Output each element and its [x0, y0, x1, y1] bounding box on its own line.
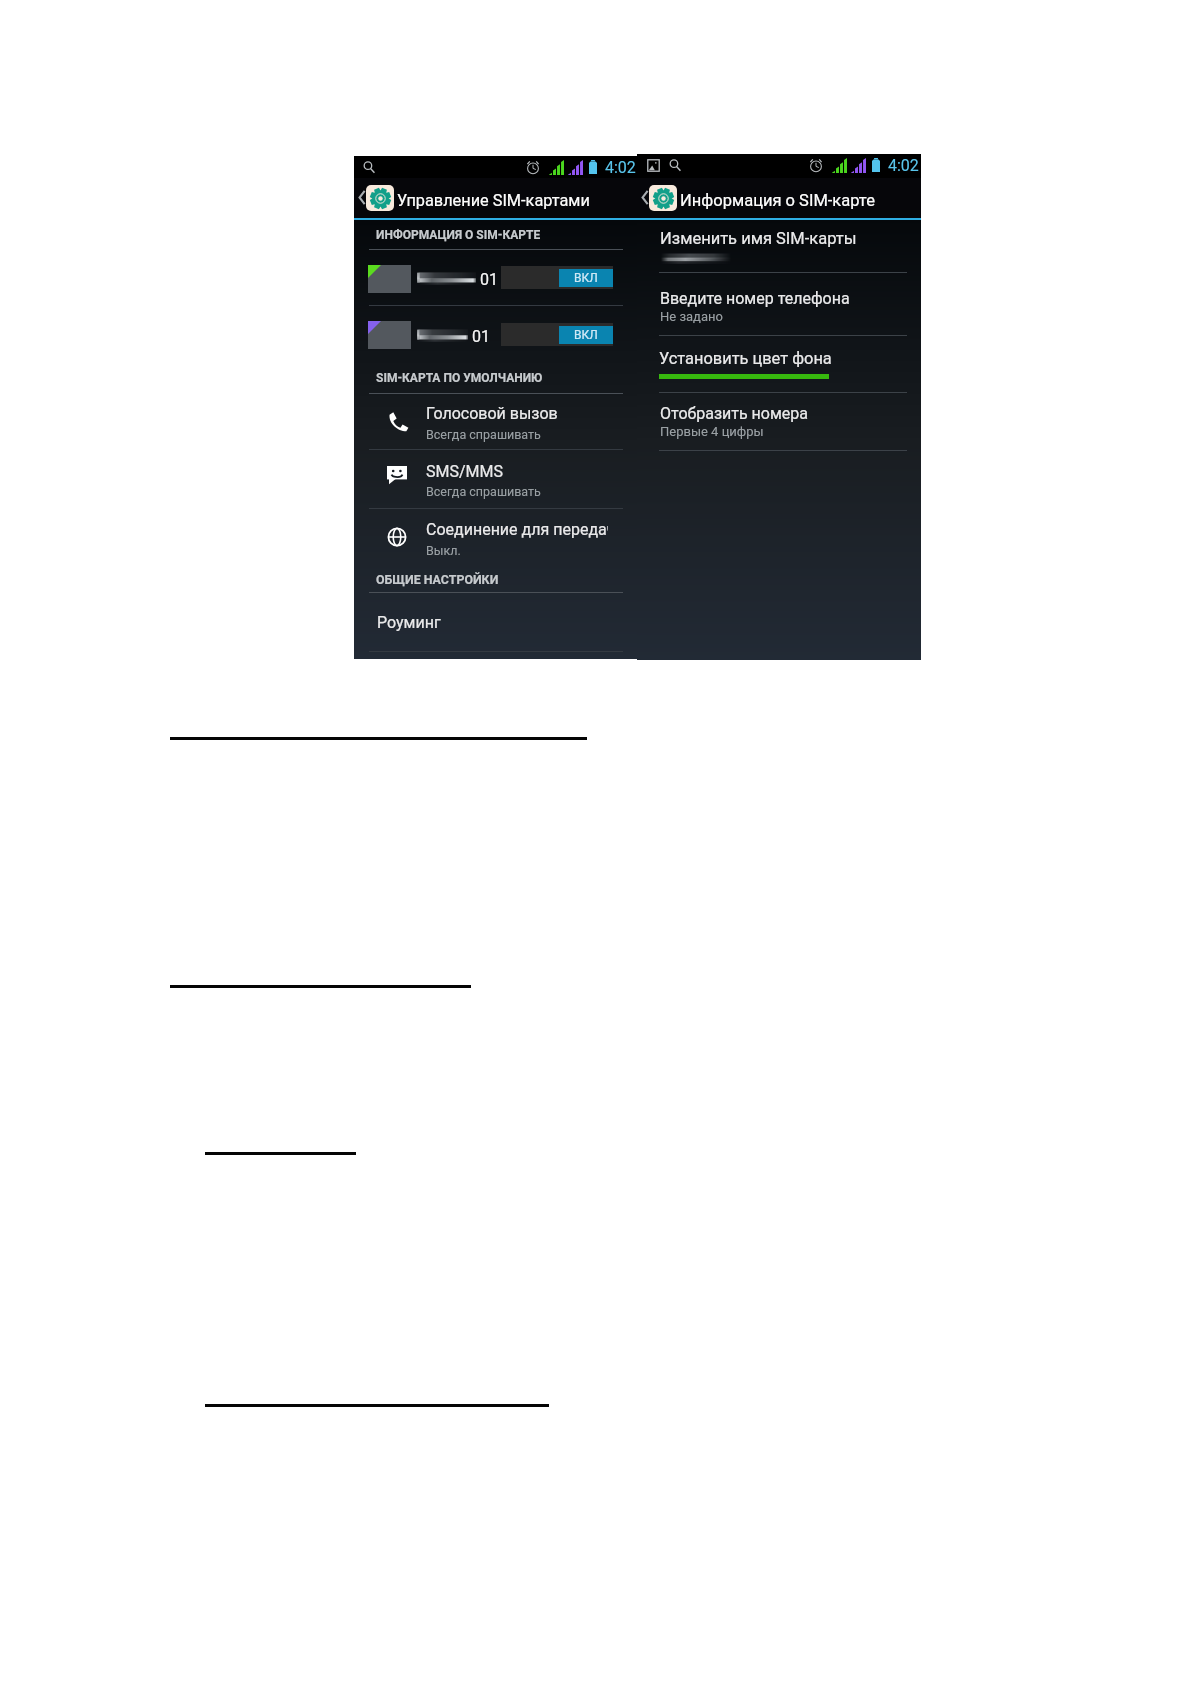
button[interactable]	[354, 509, 637, 564]
button[interactable]	[354, 588, 637, 646]
staticText: Установить цвет фона	[659, 349, 832, 368]
staticText: Всегда спрашивать	[426, 427, 541, 442]
staticText: Информация о SIM-карте	[680, 191, 875, 210]
button[interactable]	[354, 251, 637, 307]
button[interactable]	[637, 276, 921, 333]
staticText: Соединение для передач	[426, 520, 608, 539]
button[interactable]	[354, 393, 637, 448]
button[interactable]: Back	[354, 178, 637, 219]
staticText: 01	[480, 270, 498, 289]
staticText: Изменить имя SIM-карты	[660, 229, 857, 248]
staticText: 4:02	[888, 156, 919, 175]
button[interactable]	[637, 220, 921, 272]
staticText: Всегда спрашивать	[426, 484, 541, 499]
staticText: 4:02	[605, 158, 636, 177]
staticText: SIM-КАРТА ПО УМОЛЧАНИЮ	[376, 371, 543, 385]
button[interactable]	[354, 307, 637, 363]
button[interactable]: ВКЛ	[501, 266, 613, 289]
staticText: Первые 4 цифры	[660, 424, 764, 439]
staticText: Отобразить номера	[660, 404, 809, 423]
button[interactable]: ВКЛ	[501, 323, 613, 346]
staticText: ВКЛ	[574, 271, 598, 285]
button[interactable]	[637, 391, 921, 448]
staticText: Выкл.	[426, 543, 461, 558]
staticText: ИНФОРМАЦИЯ О SIM-КАРТЕ	[376, 228, 541, 242]
staticText: Управление SIM-картами	[397, 191, 590, 210]
staticText: ОБЩИЕ НАСТРОЙКИ	[376, 572, 499, 587]
button[interactable]	[354, 451, 637, 506]
staticText: ВКЛ	[574, 328, 598, 342]
staticText: Роуминг	[377, 613, 441, 632]
staticText: Введите номер телефона	[660, 289, 850, 308]
staticText: SMS/MMS	[426, 462, 504, 481]
staticText: Не задано	[660, 309, 723, 324]
button[interactable]: Back	[637, 178, 921, 218]
staticText: Голосовой вызов	[426, 404, 558, 423]
staticText: 01	[472, 327, 490, 346]
button[interactable]	[637, 336, 921, 392]
